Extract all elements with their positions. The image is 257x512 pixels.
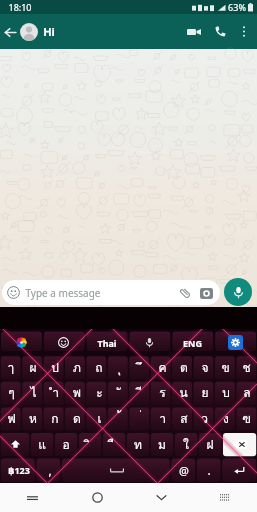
button[interactable]: Thai xyxy=(86,331,127,354)
button[interactable]: Switch keyboard xyxy=(193,483,257,512)
button[interactable]: ป xyxy=(45,356,65,379)
button[interactable]: Voice message xyxy=(224,278,252,306)
button[interactable]: แ xyxy=(31,432,53,456)
button[interactable]: ะ xyxy=(89,381,109,404)
staticText: ต xyxy=(180,358,188,377)
staticText: ค xyxy=(158,358,167,377)
button[interactable]: ่ xyxy=(132,406,151,430)
button[interactable]: พ xyxy=(67,381,87,404)
staticText: บ xyxy=(222,383,230,402)
button[interactable]: ภ xyxy=(67,356,87,379)
button[interactable]: Hi xyxy=(20,14,181,49)
button[interactable]: Hide keyboard xyxy=(129,483,193,512)
staticText: . xyxy=(207,462,211,478)
staticText: ง xyxy=(223,409,229,428)
staticText: 63% xyxy=(228,1,246,13)
button[interactable]: Enter xyxy=(222,458,256,482)
button[interactable]: ุ xyxy=(111,356,130,379)
button[interactable]: ห xyxy=(23,406,43,430)
staticText: ม xyxy=(158,435,166,454)
staticText: ล xyxy=(243,383,251,402)
staticText: ด xyxy=(73,409,81,428)
staticText: ร xyxy=(159,383,166,402)
button[interactable]: ไ xyxy=(23,381,43,404)
button[interactable]: บ xyxy=(216,381,235,404)
button[interactable]: ฟ xyxy=(1,406,21,430)
button[interactable]: ง xyxy=(216,406,235,430)
button[interactable]: เ xyxy=(89,406,109,430)
staticText: ฃ xyxy=(242,409,251,428)
button[interactable]: Call xyxy=(207,14,233,49)
button[interactable]: ื xyxy=(103,432,125,456)
button[interactable]: ี xyxy=(132,381,151,404)
button[interactable]: ต xyxy=(174,356,193,379)
button[interactable]: จ xyxy=(195,356,214,379)
button[interactable]: ฝ xyxy=(199,432,221,456)
button[interactable] xyxy=(43,331,84,354)
button[interactable]: Type a message xyxy=(2,280,220,305)
button[interactable]: ช xyxy=(237,356,256,379)
button[interactable]: Backspace xyxy=(223,432,256,456)
button[interactable]: ๅ xyxy=(1,356,21,379)
button[interactable]: Space xyxy=(63,458,170,482)
button[interactable]: Shift xyxy=(1,432,29,456)
staticText: ใ xyxy=(183,435,189,454)
button[interactable]: ENG xyxy=(172,331,213,354)
button[interactable]: Home xyxy=(65,483,129,512)
button[interactable]: ล xyxy=(237,381,256,404)
button[interactable]: น xyxy=(174,381,193,404)
staticText: ๅ xyxy=(8,358,14,377)
button[interactable]: Camera xyxy=(197,284,215,302)
button[interactable] xyxy=(1,331,41,354)
button[interactable]: ค xyxy=(153,356,172,379)
button[interactable]: ว xyxy=(195,406,214,430)
button[interactable]: @ xyxy=(172,458,195,482)
staticText: 18:10 xyxy=(8,1,32,13)
button[interactable]: . xyxy=(197,458,220,482)
staticText: พ xyxy=(73,383,81,402)
button[interactable]: ส xyxy=(174,406,193,430)
button[interactable]: อ xyxy=(55,432,77,456)
staticText: ะ xyxy=(96,383,103,402)
button[interactable]: Recents xyxy=(0,483,65,512)
button[interactable]: ร xyxy=(153,381,172,404)
button[interactable]: ้ xyxy=(111,406,130,430)
button[interactable]: ึ xyxy=(132,356,151,379)
staticText: แ xyxy=(38,435,46,454)
button[interactable]: ั xyxy=(111,381,130,404)
button[interactable] xyxy=(215,331,256,354)
button[interactable]: ม xyxy=(151,432,173,456)
button[interactable]: ๆ xyxy=(1,381,21,404)
staticText: ำ xyxy=(52,383,59,402)
button[interactable]: Back xyxy=(0,22,20,42)
staticText: ช xyxy=(242,358,251,377)
staticText: Type a message xyxy=(25,286,101,300)
button[interactable]: ข xyxy=(216,356,235,379)
staticText: ฝ xyxy=(206,435,214,454)
button[interactable] xyxy=(129,331,170,354)
staticText: ข xyxy=(221,358,230,377)
button[interactable]: More options xyxy=(233,14,255,49)
button[interactable]: ด xyxy=(67,406,87,430)
button[interactable]: ถ xyxy=(89,356,109,379)
staticText: ฿123 xyxy=(8,464,30,476)
button[interactable]: ำ xyxy=(45,381,65,404)
button[interactable]: ิ xyxy=(79,432,101,456)
staticText: ผ xyxy=(29,358,37,377)
button[interactable]: ฃ xyxy=(237,406,256,430)
staticText: เ xyxy=(97,409,102,428)
button[interactable]: ใ xyxy=(175,432,197,456)
button[interactable]: ผ xyxy=(23,356,43,379)
button[interactable]: ย xyxy=(195,381,214,404)
staticText: ท xyxy=(134,435,142,454)
staticText: ฟ xyxy=(7,409,16,428)
staticText: @ xyxy=(179,463,189,478)
button[interactable]: ท xyxy=(127,432,149,456)
button[interactable]: Video call xyxy=(181,14,207,49)
staticText: ว xyxy=(201,409,208,428)
button[interactable]: Attach xyxy=(176,284,194,302)
button[interactable]: , xyxy=(38,458,61,482)
button[interactable]: Numbers xyxy=(1,458,36,482)
button[interactable]: ก xyxy=(45,406,65,430)
button[interactable]: า xyxy=(153,406,172,430)
